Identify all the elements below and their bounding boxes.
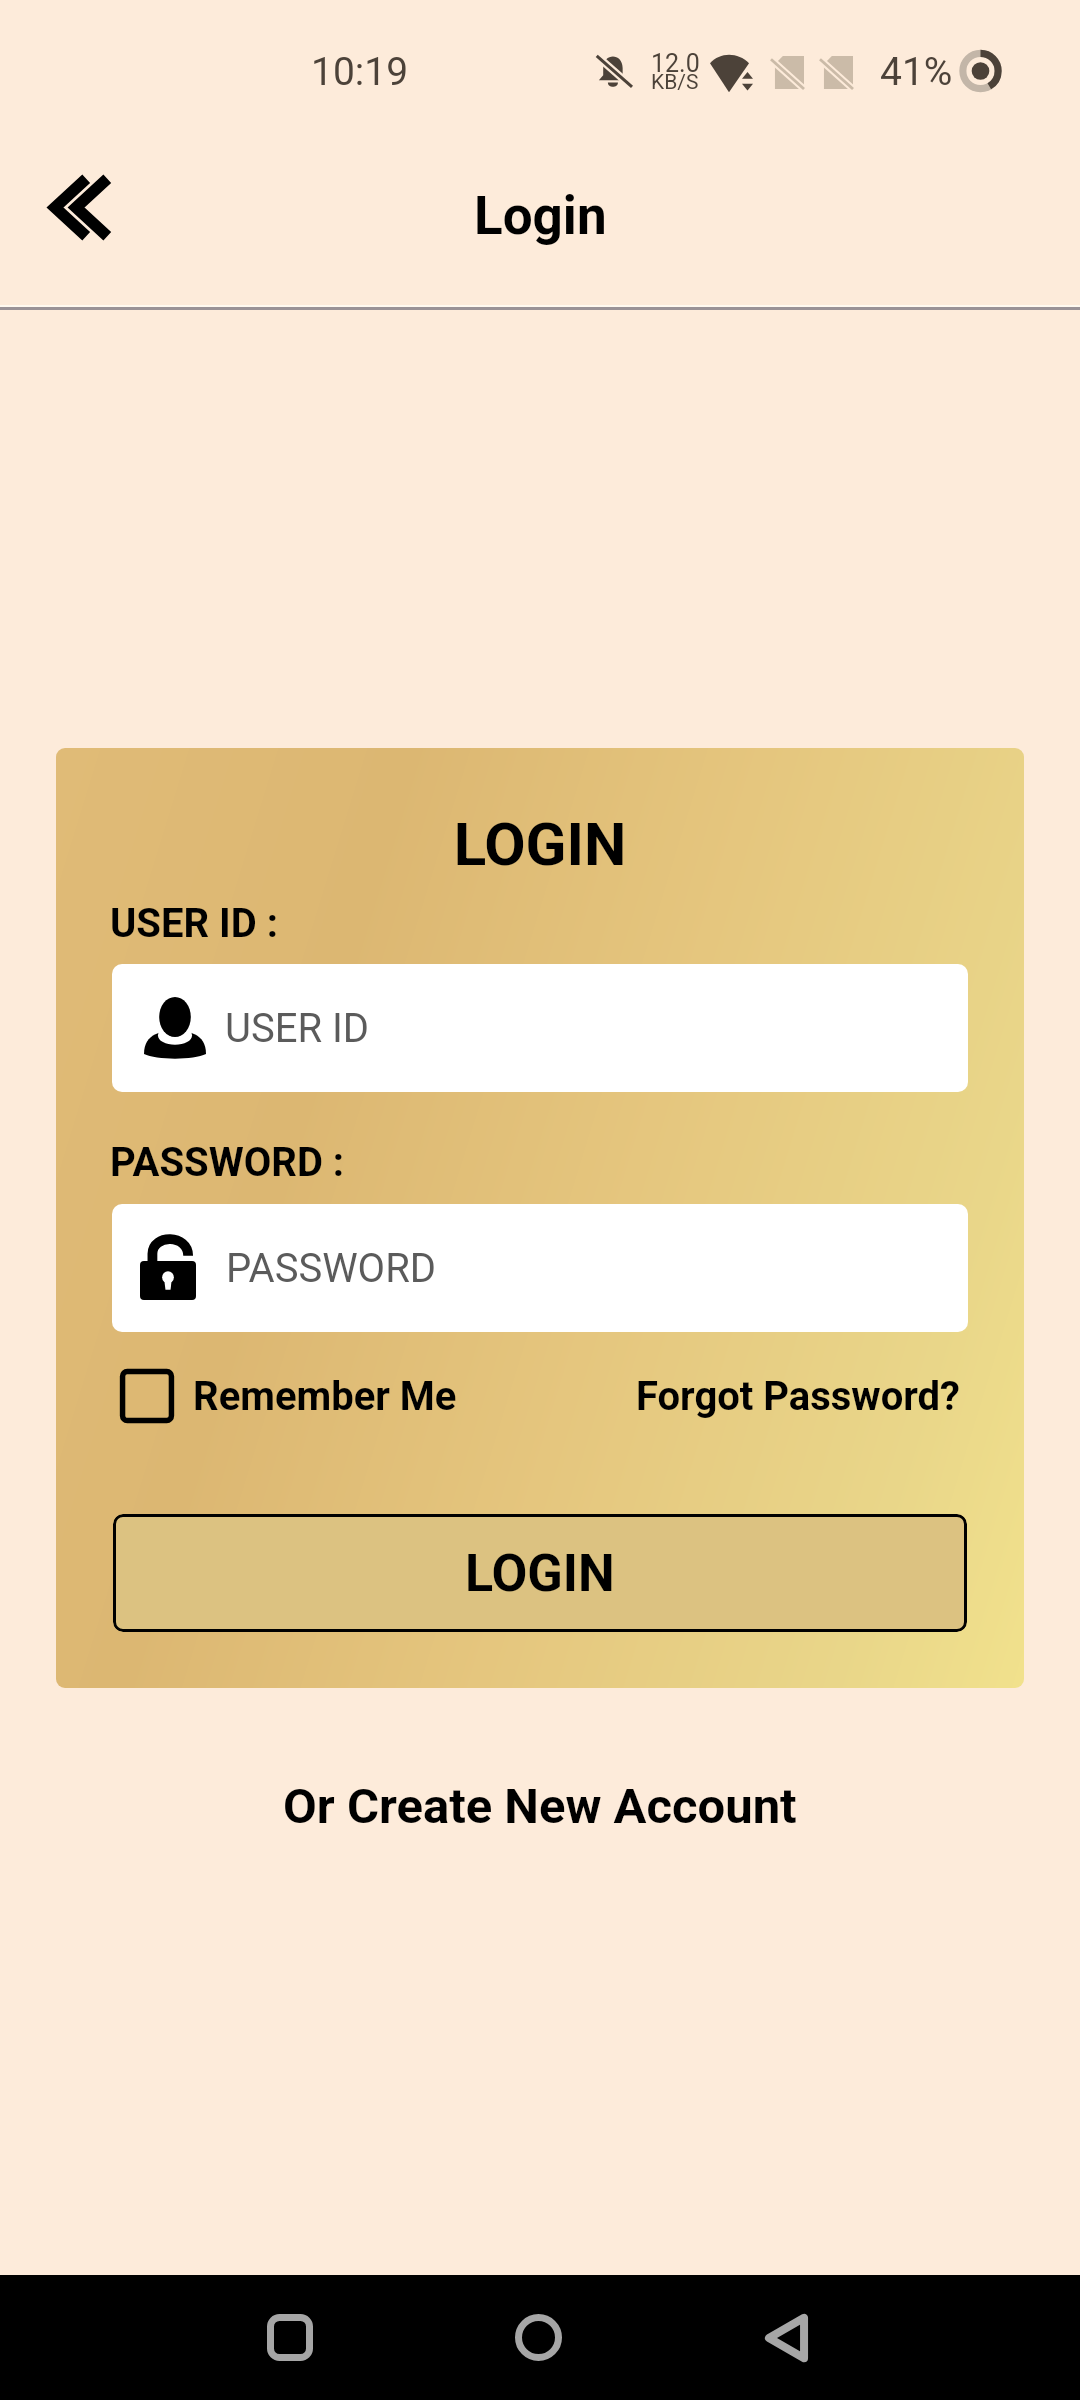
button[interactable]: Remember Me (121, 1370, 457, 1422)
staticText: Remember Me (193, 1373, 457, 1420)
staticText: Or Create New Account (283, 1778, 797, 1835)
staticText: 41% (880, 49, 953, 95)
button[interactable]: LOGIN (113, 1514, 967, 1632)
button[interactable]: Forgot Password? (636, 1373, 961, 1420)
staticText: USER ID : (110, 900, 278, 947)
staticText: PASSWORD (226, 1245, 437, 1292)
staticText: 10:19 (311, 49, 409, 95)
staticText: Login (474, 185, 607, 247)
button[interactable]: Back (19, 146, 141, 268)
button[interactable]: Home (460, 2275, 616, 2400)
staticText: PASSWORD : (110, 1139, 345, 1186)
button[interactable]: Recent apps (212, 2275, 368, 2400)
staticText: 12.0 (651, 49, 700, 78)
button[interactable]: Or Create New Account (0, 1774, 1080, 1838)
button[interactable]: PASSWORD (112, 1204, 968, 1332)
staticText: USER ID (225, 1005, 370, 1052)
button[interactable]: USER ID (112, 964, 968, 1092)
staticText: LOGIN (56, 809, 1024, 879)
button[interactable]: Back (708, 2275, 864, 2400)
staticText: LOGIN (465, 1543, 615, 1604)
staticText: KB/S (651, 70, 699, 95)
staticText: Forgot Password? (636, 1373, 961, 1420)
